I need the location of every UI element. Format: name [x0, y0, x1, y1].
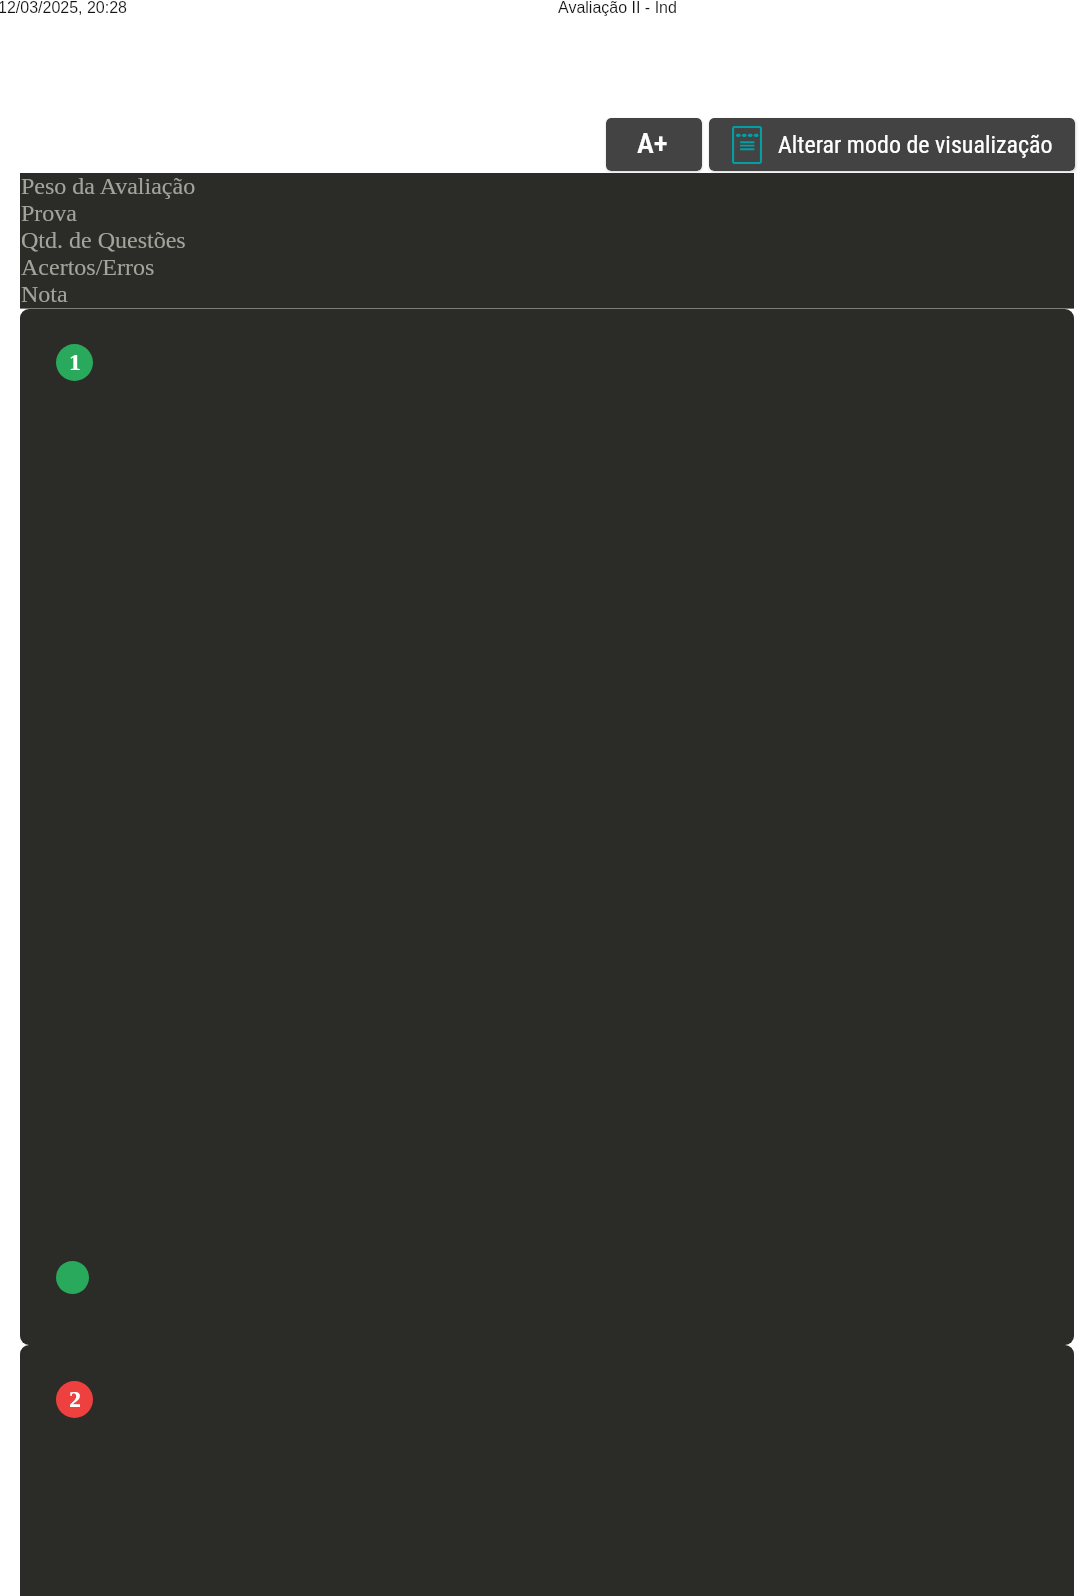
staticText: Qtd. de Questões [21, 227, 186, 254]
button[interactable]: Prova 2 [20, 1345, 1074, 1596]
staticText: Alterar modo de visualização [778, 131, 1053, 159]
button[interactable]: Alterar modo de visualização [709, 118, 1075, 171]
button[interactable]: Prova 1 [20, 309, 1074, 1345]
staticText: 2 [69, 1386, 81, 1413]
other: Alterar modo de visualização [732, 126, 762, 164]
button[interactable]: A+ [606, 118, 702, 171]
staticText: Prova [21, 200, 77, 227]
staticText: Acertos/Erros [21, 254, 155, 281]
staticText: Avaliação II - Ind [558, 0, 677, 17]
staticText: Nota [21, 281, 68, 308]
staticText: 12/03/2025, 20:28 [0, 0, 128, 17]
staticText: Peso da Avaliação [21, 173, 196, 200]
staticText: A+ [637, 127, 668, 160]
staticText: 1 [69, 349, 81, 376]
